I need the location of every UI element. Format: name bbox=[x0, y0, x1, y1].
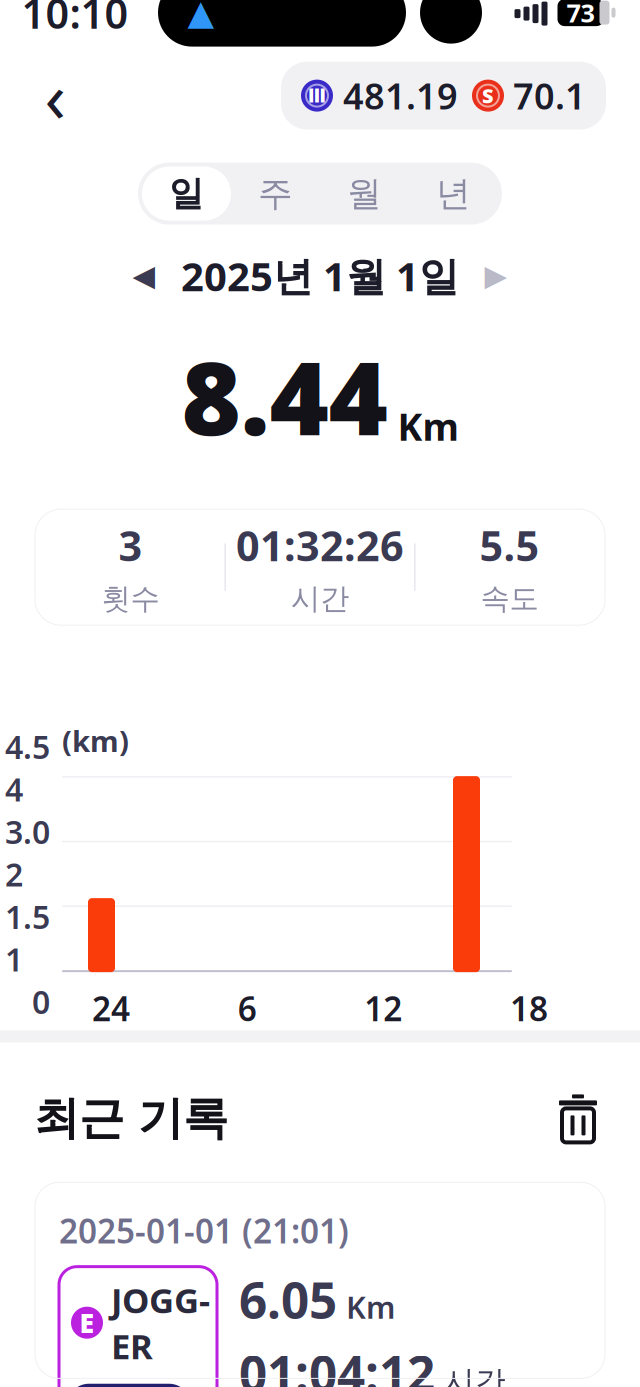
staticText: 10:10 bbox=[21, 0, 128, 40]
staticText: 0 bbox=[32, 980, 50, 1023]
staticText: JOGGER bbox=[111, 1277, 210, 1369]
staticText: 1.51 bbox=[5, 895, 50, 980]
staticText: Ⅲ bbox=[307, 84, 326, 107]
staticText: 01:04:12 bbox=[239, 1340, 435, 1387]
staticText: 01:32:26 bbox=[236, 518, 404, 573]
staticText: 18 bbox=[510, 986, 548, 1030]
staticText: ◀ bbox=[132, 259, 155, 292]
staticText: 일 bbox=[169, 172, 204, 215]
button[interactable]: Currency balances bbox=[281, 62, 606, 129]
staticText: 73 bbox=[566, 0, 594, 29]
staticText: 월 bbox=[347, 172, 382, 215]
button[interactable]: 주 bbox=[231, 167, 320, 221]
staticText: ▶ bbox=[484, 259, 507, 292]
staticText: 12 bbox=[364, 986, 402, 1030]
staticText: 년 bbox=[436, 172, 471, 215]
button[interactable]: Previous day bbox=[117, 249, 171, 303]
staticText: ‹ bbox=[44, 50, 65, 142]
staticText: 최근 기록 bbox=[34, 1091, 228, 1146]
button[interactable]: 월 bbox=[320, 167, 409, 221]
staticText: S bbox=[482, 82, 494, 109]
staticText: 481.19 bbox=[343, 72, 458, 119]
button[interactable]: Next day bbox=[469, 249, 523, 303]
staticText: 24 bbox=[92, 986, 130, 1030]
staticText: E bbox=[79, 1305, 94, 1340]
button[interactable]: 2025-01-01 (21:01) bbox=[35, 1182, 605, 1378]
staticText: ▲ bbox=[187, 0, 214, 32]
staticText: 2025-01-01 (21:01) bbox=[59, 1208, 349, 1253]
staticText: 6.05 bbox=[239, 1267, 337, 1332]
staticText: 2025년 1월 1일 bbox=[181, 249, 459, 302]
staticText: 시간 bbox=[444, 1363, 506, 1387]
button[interactable]: Back bbox=[20, 64, 90, 128]
staticText: 4.54 bbox=[5, 725, 50, 810]
staticText: Km bbox=[346, 1286, 395, 1327]
staticText: 5.5 bbox=[479, 518, 539, 573]
staticText: 속도 bbox=[480, 581, 538, 617]
button[interactable]: 일 bbox=[142, 167, 231, 221]
staticText: 주 bbox=[258, 172, 293, 215]
button[interactable]: Delete records bbox=[550, 1090, 606, 1146]
button[interactable]: 년 bbox=[409, 167, 498, 221]
staticText: 시간 bbox=[291, 581, 349, 617]
staticText: 8.44 bbox=[181, 329, 387, 463]
staticText: 횟수 bbox=[101, 581, 159, 617]
staticText: 3 bbox=[118, 518, 142, 573]
staticText: (km) bbox=[62, 721, 129, 760]
staticText: 70.1 bbox=[513, 72, 586, 119]
staticText: 6 bbox=[238, 986, 257, 1030]
staticText: 3.02 bbox=[5, 810, 50, 895]
staticText: Km bbox=[397, 402, 458, 451]
